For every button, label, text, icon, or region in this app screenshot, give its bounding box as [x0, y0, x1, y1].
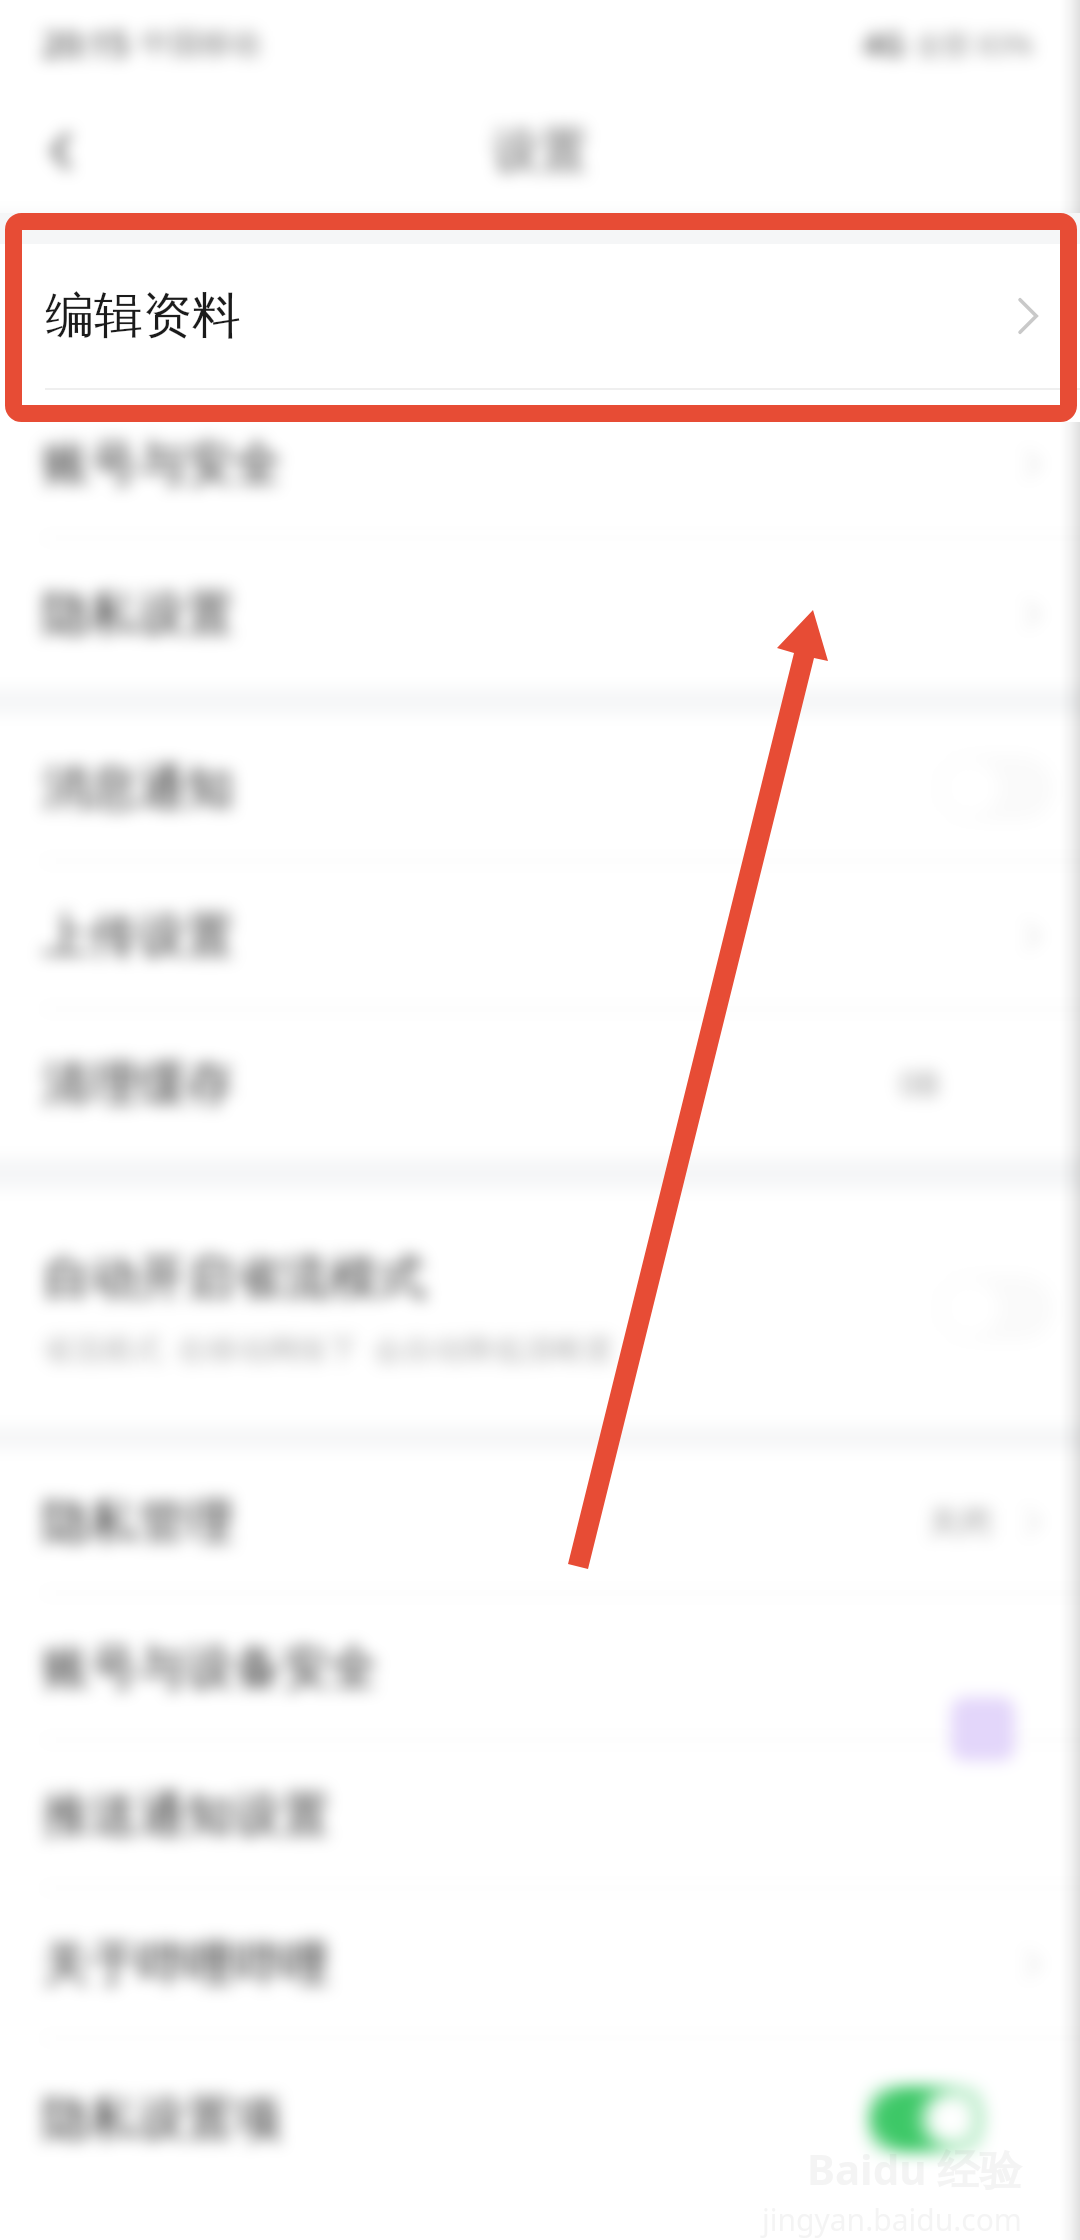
button[interactable]: 推送通知设置: [0, 1741, 1080, 1889]
staticText: 全部 83%: [915, 25, 1034, 63]
staticText: 账号与设备安全: [42, 1638, 378, 1698]
button[interactable]: 关于哔哩哔哩: [0, 1889, 1080, 2039]
button[interactable]: 隐私设置项: [0, 2039, 1080, 2199]
staticText: jingyan.baidu.com: [762, 2199, 1022, 2240]
staticText: 隐私设置: [42, 584, 234, 644]
button[interactable]: 账号与设备安全: [0, 1594, 1080, 1741]
staticText: 4G: [863, 22, 905, 66]
staticText: 隐私设置项: [42, 2089, 282, 2149]
staticText: 关于哔哩哔哩: [42, 1934, 330, 1994]
staticText: 设置: [492, 121, 588, 181]
staticText: 编辑资料: [42, 286, 234, 346]
staticText: 账号与安全: [42, 434, 282, 494]
staticText: 0B: [900, 1062, 940, 1106]
button[interactable]: 编辑资料: [0, 244, 1080, 388]
button[interactable]: 隐私管理: [0, 1449, 1080, 1594]
staticText: Baidu 经验: [807, 2140, 1022, 2197]
button[interactable]: 编辑资料: [0, 244, 1080, 388]
button[interactable]: Switch on: [868, 2086, 984, 2152]
staticText: 编辑资料: [45, 285, 241, 347]
staticText: 隐私管理: [42, 1492, 234, 1552]
button[interactable]: 隐私设置: [0, 539, 1080, 689]
staticText: 关闭: [928, 1502, 992, 1542]
staticText: 消息通知: [42, 758, 234, 818]
button[interactable]: Back: [0, 88, 124, 213]
staticText: 清理缓存: [42, 1054, 234, 1114]
staticText: 自动开启省流模式: [42, 1248, 426, 1308]
button[interactable]: 清理缓存: [0, 1010, 1080, 1158]
button[interactable]: 消息通知: [0, 714, 1080, 862]
staticText: 省流模式 在移动网络下 会自动降低清晰度: [42, 1328, 614, 1369]
button[interactable]: 账号与安全: [0, 388, 1080, 539]
staticText: 20:15: [42, 21, 130, 67]
button[interactable]: 上传设置: [0, 862, 1080, 1010]
staticText: 中国移动: [140, 25, 260, 63]
button[interactable]: 自动开启省流模式: [0, 1189, 1080, 1427]
staticText: 推送通知设置: [42, 1785, 330, 1845]
staticText: 上传设置: [42, 906, 234, 966]
